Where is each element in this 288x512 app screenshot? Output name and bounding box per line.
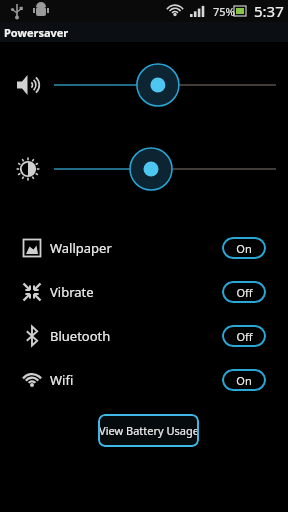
staticText: Powersaver	[4, 25, 69, 40]
button[interactable]: Vibrate	[0, 270, 288, 314]
button[interactable]: Wifi	[0, 358, 288, 402]
button[interactable]: Volume	[0, 54, 288, 116]
staticText: Wifi	[50, 371, 74, 389]
staticText: View Battery Usage	[99, 423, 199, 438]
button[interactable]: View Battery Usage	[98, 414, 199, 447]
button[interactable]: Off	[222, 325, 266, 347]
staticText: Vibrate	[50, 283, 94, 301]
button[interactable]: Off	[222, 281, 266, 303]
staticText: 5:37	[254, 1, 284, 21]
button[interactable]: On	[222, 237, 266, 259]
staticText: Wallpaper	[50, 239, 112, 257]
staticText: Off	[236, 329, 253, 344]
staticText: On	[236, 373, 252, 388]
staticText: Bluetooth	[50, 327, 111, 345]
button[interactable]: Bluetooth	[0, 314, 288, 358]
button[interactable]: Brightness	[0, 138, 288, 200]
staticText: On	[236, 241, 252, 256]
staticText: 75%	[213, 4, 235, 19]
button[interactable]: Wallpaper	[0, 226, 288, 270]
button[interactable]: On	[222, 369, 266, 391]
staticText: Off	[236, 285, 253, 300]
